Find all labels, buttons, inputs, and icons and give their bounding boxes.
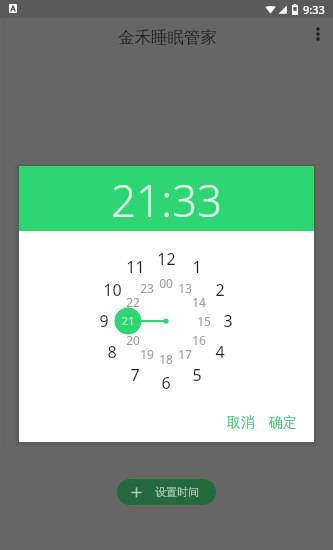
staticText: 18 — [159, 351, 173, 367]
staticText: 9 — [99, 310, 109, 332]
staticText: 17 — [178, 346, 192, 362]
staticText: 取消 — [227, 414, 255, 432]
staticText: 14 — [192, 294, 206, 310]
staticText: 9:33 — [303, 2, 325, 17]
staticText: 21 — [121, 313, 135, 329]
staticText: 6 — [161, 372, 171, 394]
staticText: 20 — [126, 332, 140, 348]
staticText: 12 — [157, 248, 176, 270]
staticText: 10 — [103, 279, 122, 301]
staticText: 确定 — [269, 414, 297, 432]
staticText: 8 — [107, 341, 117, 363]
staticText: 设置时间 — [155, 485, 199, 499]
staticText: 金禾睡眠管家 — [118, 27, 217, 48]
staticText: 13 — [178, 280, 192, 296]
staticText: 7 — [130, 364, 140, 386]
staticText: 21:33 — [111, 170, 223, 230]
staticText: 4 — [215, 341, 225, 363]
staticText: 2 — [215, 279, 225, 301]
button[interactable]: 设置时间 — [117, 479, 216, 505]
staticText: 00 — [159, 275, 173, 291]
staticText: 19 — [140, 346, 154, 362]
button[interactable]: 确定 — [263, 409, 303, 437]
staticText: 23 — [140, 280, 154, 296]
staticText: 11 — [126, 256, 145, 278]
staticText: 1 — [192, 256, 202, 278]
staticText: 22 — [126, 294, 140, 310]
staticText: 3 — [223, 310, 233, 332]
staticText: 5 — [192, 364, 202, 386]
button[interactable]: More options — [307, 23, 329, 45]
button[interactable]: 取消 — [221, 409, 261, 437]
staticText: 16 — [192, 332, 206, 348]
staticText: 15 — [197, 313, 211, 329]
